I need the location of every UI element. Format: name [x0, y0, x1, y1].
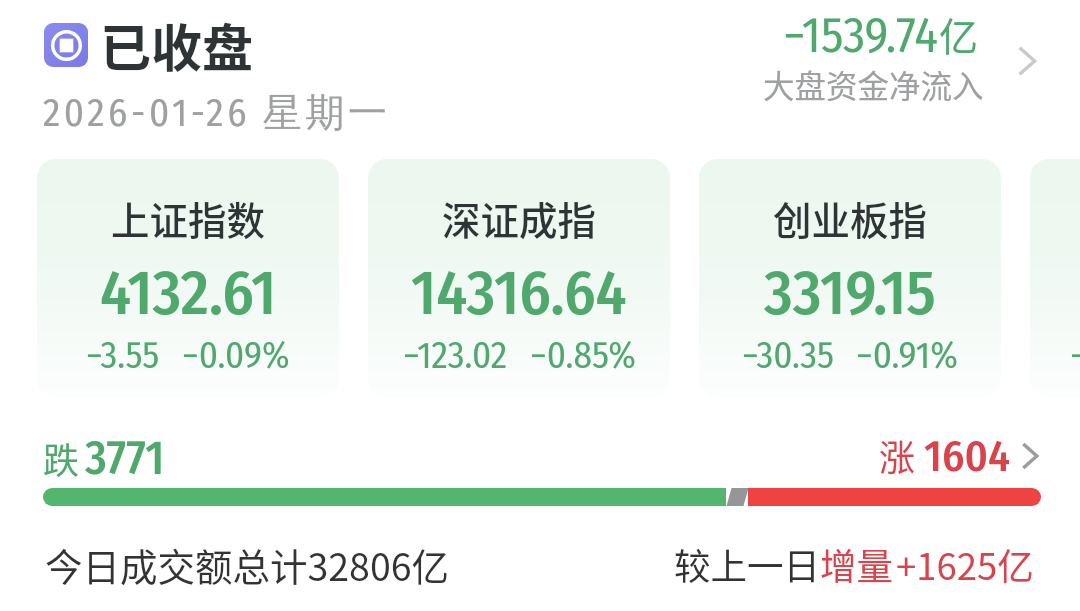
staticText: 大盘资金净流入 — [763, 61, 984, 107]
staticText: +1625亿 — [896, 538, 1034, 591]
button[interactable]: Advance decline ratio bar — [43, 488, 1041, 506]
staticText: −0.91% — [856, 333, 958, 377]
button[interactable]: 深证成指 — [368, 159, 670, 398]
staticText: 涨 — [879, 429, 916, 481]
button[interactable]: Advancers 1604 — [879, 430, 1010, 483]
button[interactable]: Decliners 3771 — [43, 430, 165, 486]
button[interactable]: 科创50 — [1030, 159, 1080, 398]
staticText: 2026-01-26 星期一 — [43, 88, 391, 137]
staticText: −3.55 — [86, 333, 160, 377]
staticText: −118.57 — [1070, 333, 1080, 377]
button[interactable]: Advancers and decliners detail — [1008, 434, 1052, 478]
staticText: 3771 — [85, 430, 165, 486]
staticText: −1539.74 — [783, 6, 939, 65]
staticText: −123.02 — [403, 333, 508, 377]
button[interactable]: Capital flow details — [1004, 38, 1050, 84]
staticText: −30.35 — [742, 333, 834, 377]
button[interactable]: Market capital flow — [783, 6, 979, 65]
staticText: 已收盘 — [100, 8, 254, 82]
button[interactable]: 上证指数 — [37, 159, 339, 398]
staticText: 增量 — [820, 538, 893, 591]
staticText: −0.85% — [530, 333, 636, 377]
button[interactable]: 创业板指 — [699, 159, 1001, 398]
staticText: −0.09% — [182, 333, 290, 377]
staticText: 14316.64 — [411, 256, 627, 330]
staticText: 跌 — [43, 432, 80, 484]
staticText: 上证指数 — [111, 190, 266, 246]
staticText: 亿 — [939, 6, 979, 62]
staticText: 创业板指 — [773, 190, 928, 246]
staticText: 3319.15 — [764, 256, 936, 330]
staticText: 4132.61 — [100, 256, 277, 330]
staticText: 较上一日 — [674, 538, 820, 591]
staticText: 深证成指 — [442, 190, 597, 246]
staticText: 今日成交额总计32806亿 — [45, 537, 450, 591]
button[interactable]: Market status closed — [44, 8, 254, 82]
staticText: 1604 — [924, 430, 1010, 483]
